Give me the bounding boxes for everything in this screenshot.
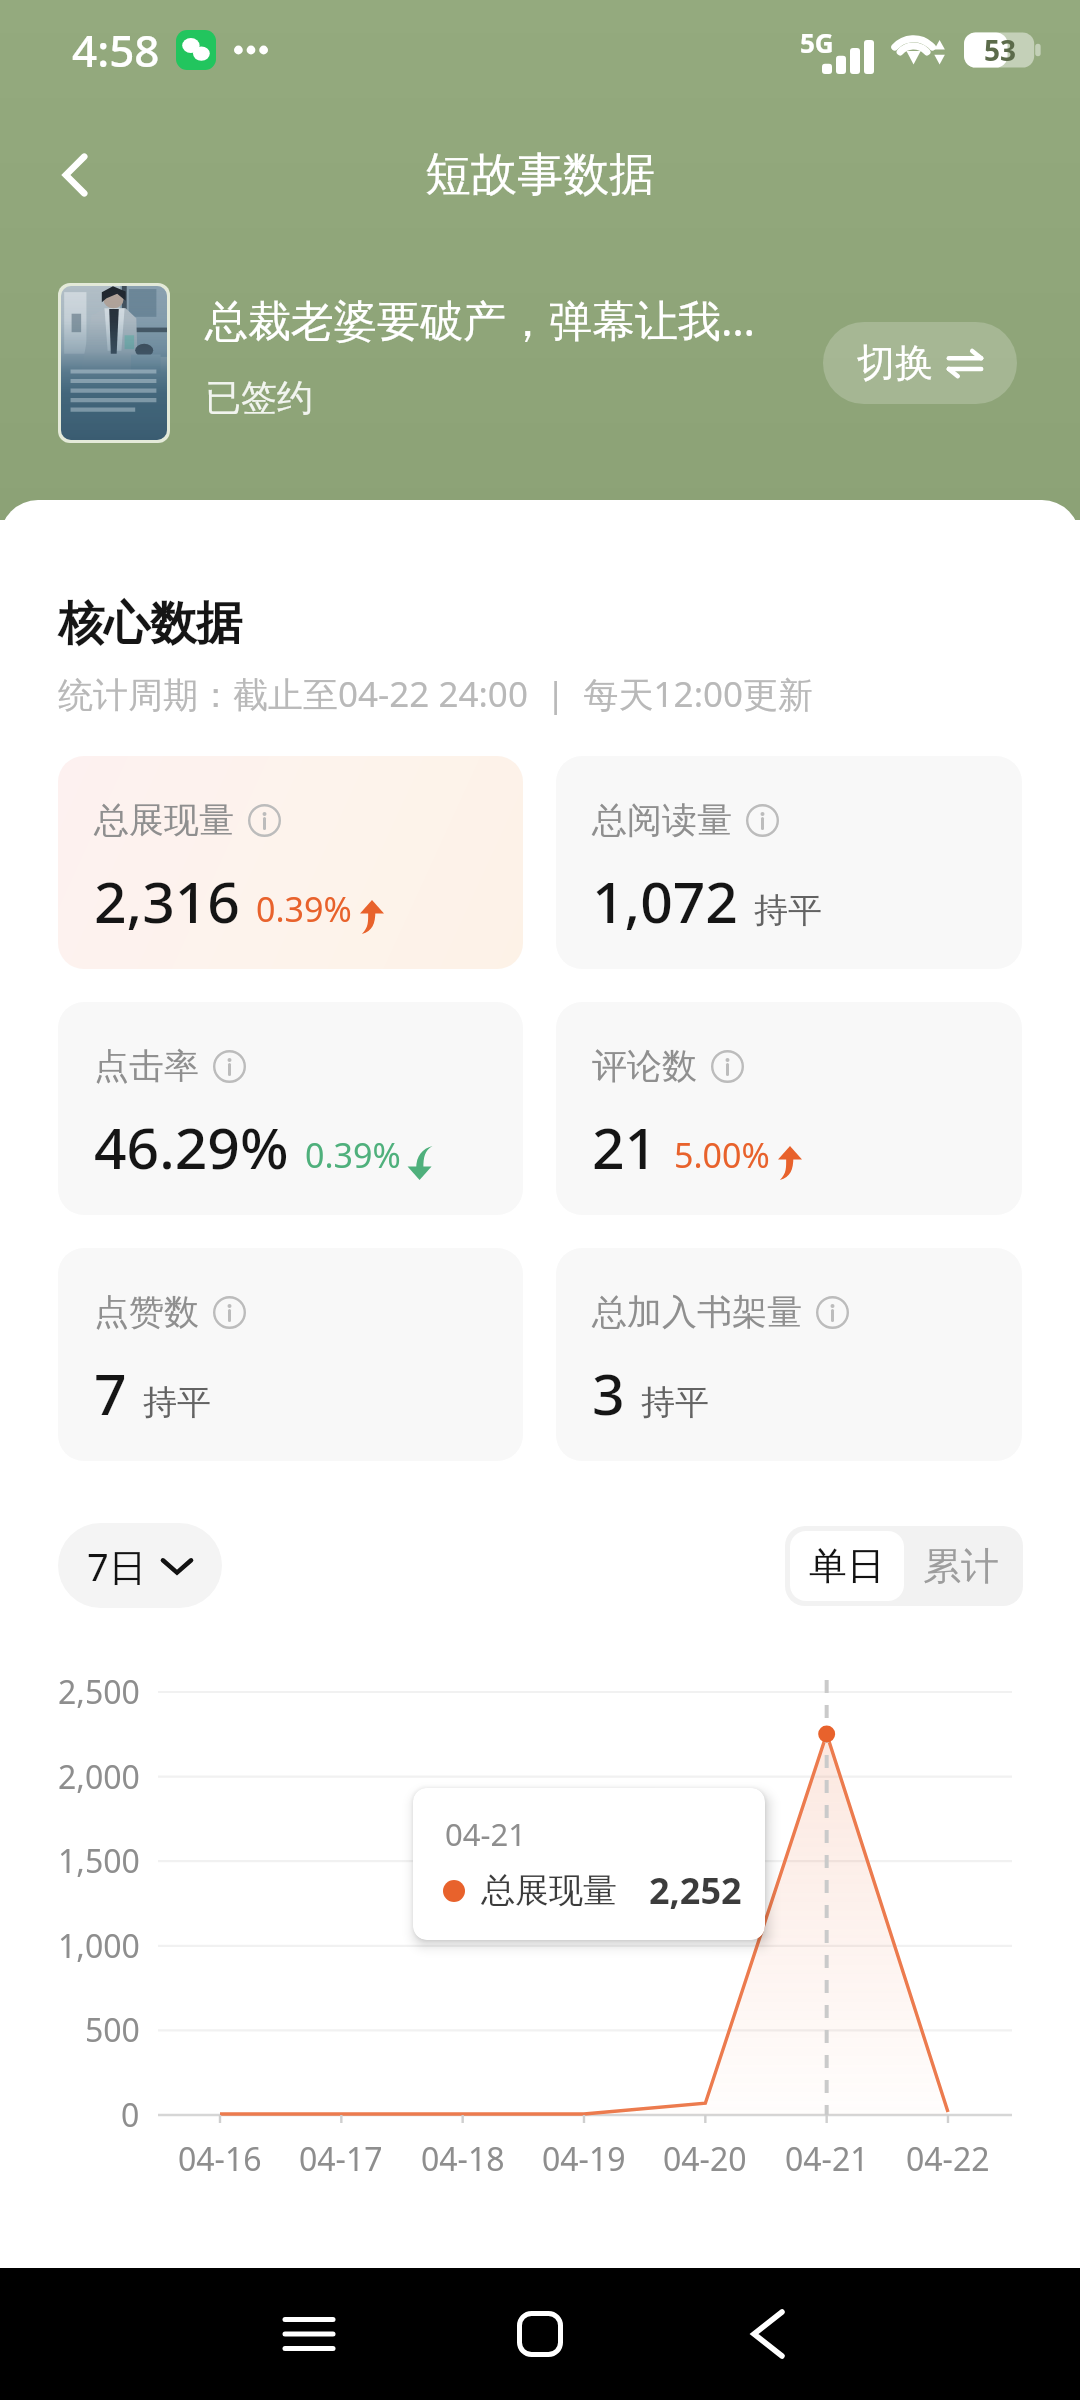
button[interactable]: 总阅读量 [556,756,1022,969]
staticText: 总加入书架量 [592,1290,802,1334]
staticText: 46.29% [94,1108,289,1186]
staticText: 1,072 [592,862,738,940]
staticText: 04-20 [663,2137,747,2181]
staticText: 点击率 [94,1044,199,1088]
staticText: 0.39% [305,1132,401,1178]
staticText: 核心数据 [58,595,242,653]
staticText: 短故事数据 [425,146,655,204]
staticText: 04-21 [445,1813,526,1855]
button[interactable]: Recents [259,2284,359,2384]
button[interactable]: Back [718,2284,818,2384]
button[interactable]: Home [490,2284,590,2384]
button[interactable]: 点赞数 [58,1248,523,1461]
staticText: 已签约 [205,375,313,420]
staticText: 统计周期：截止至04-22 24:00 | 每天12:00更新 [58,670,814,718]
staticText: 5G [800,25,834,60]
button[interactable]: 单日 [790,1531,904,1601]
staticText: 2,500 [58,1670,140,1714]
staticText: 3 [592,1354,625,1432]
staticText: 7 [94,1354,127,1432]
staticText: 总裁老婆要破产，弹幕让我… [205,290,756,349]
button[interactable]: Back [38,137,114,213]
staticText: 评论数 [592,1044,697,1088]
button[interactable]: 评论数 [556,1002,1022,1215]
staticText: 5.00% [674,1132,770,1178]
staticText: 0.39% [256,886,352,932]
staticText: 持平 [754,889,822,932]
staticText: 7日 [87,1540,147,1592]
staticText: 2,252 [649,1866,742,1915]
staticText: 持平 [641,1381,709,1424]
staticText: 04-22 [906,2137,990,2181]
staticText: 2,000 [58,1755,140,1799]
button[interactable]: 累计 [904,1531,1018,1601]
staticText: 单日 [809,1542,885,1590]
staticText: 04-21 [785,2137,869,2181]
staticText: 总阅读量 [592,798,732,842]
staticText: 53 [984,31,1017,69]
staticText: 04-17 [299,2137,383,2181]
button[interactable]: 点击率 [58,1002,523,1215]
staticText: 04-16 [178,2137,262,2181]
staticText: 500 [85,2008,140,2052]
staticText: 04-18 [421,2137,505,2181]
staticText: 0 [121,2093,140,2137]
staticText: 累计 [923,1542,999,1590]
button[interactable]: 总展现量 [58,756,523,969]
staticText: 4:58 [72,20,160,80]
staticText: 21 [592,1108,658,1186]
staticText: 总展现量 [481,1869,617,1912]
staticText: 04-19 [542,2137,626,2181]
staticText: 切换 [857,339,933,387]
staticText: 总展现量 [94,798,234,842]
button[interactable]: 总加入书架量 [556,1248,1022,1461]
staticText: 1,000 [58,1924,140,1968]
button[interactable] [0,283,800,443]
staticText: 1,500 [58,1839,140,1883]
button[interactable]: 7日 [58,1523,222,1608]
staticText: 持平 [143,1381,211,1424]
staticText: 点赞数 [94,1290,199,1334]
staticText: 2,316 [94,862,240,940]
button[interactable]: 切换 [823,322,1017,404]
